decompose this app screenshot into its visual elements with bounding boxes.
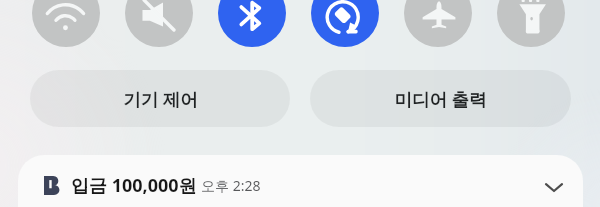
- button[interactable]: Wi-Fi: [32, 0, 100, 47]
- staticText: 기기 제어: [123, 87, 198, 111]
- button[interactable]: Flashlight: [497, 0, 565, 47]
- staticText: 오후 2:28: [201, 176, 261, 195]
- button[interactable]: Expand notification: [539, 172, 569, 202]
- staticText: 미디어 출력: [394, 87, 487, 111]
- button[interactable]: 입금 100,000원: [18, 155, 583, 207]
- button[interactable]: 기기 제어: [30, 70, 290, 127]
- button[interactable]: Auto rotate: [311, 0, 379, 47]
- button[interactable]: Airplane mode: [404, 0, 472, 47]
- button[interactable]: Bluetooth: [218, 0, 286, 47]
- button[interactable]: Mute: [125, 0, 193, 47]
- button[interactable]: 미디어 출력: [310, 70, 571, 127]
- staticText: 입금 100,000원: [71, 173, 197, 198]
